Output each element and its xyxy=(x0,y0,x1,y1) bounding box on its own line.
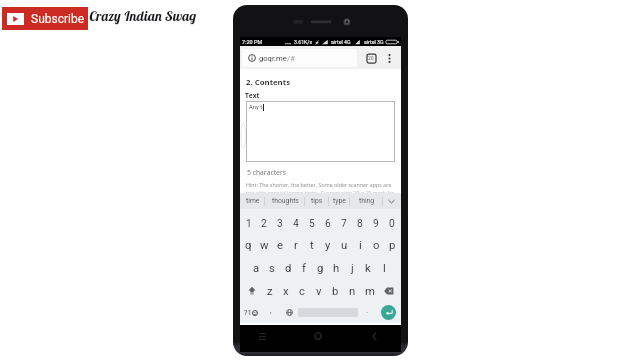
button[interactable]: i xyxy=(352,233,368,256)
button[interactable]: 7 xyxy=(336,209,352,233)
button[interactable]: h xyxy=(328,256,344,279)
staticText: ?1 xyxy=(244,308,252,317)
button[interactable]: c xyxy=(294,279,310,302)
staticText: thoughts xyxy=(272,197,299,205)
button[interactable]: Home xyxy=(309,327,327,345)
staticText: s xyxy=(269,262,275,275)
staticText: , xyxy=(270,306,272,315)
staticText: Crazy Indian Swag xyxy=(89,6,197,24)
button[interactable]: k xyxy=(360,256,376,279)
staticText: b xyxy=(332,285,339,298)
button[interactable]: 3 xyxy=(272,209,288,233)
button[interactable]: Change language xyxy=(280,302,298,323)
button[interactable]: t xyxy=(304,233,320,256)
button[interactable]: 2 xyxy=(256,209,272,233)
button[interactable]: m xyxy=(361,279,378,302)
button[interactable]: 6 xyxy=(320,209,336,233)
button[interactable]: b xyxy=(327,279,344,302)
button[interactable]: thoughts xyxy=(265,193,305,209)
staticText: m xyxy=(365,285,375,298)
staticText: 7:20 PM xyxy=(242,39,263,45)
staticText: airtel 3G xyxy=(364,39,384,45)
staticText: 2 xyxy=(261,218,267,230)
button[interactable]: 8 xyxy=(352,209,368,233)
staticText: not able to read longer texts. Current s… xyxy=(246,189,395,196)
button[interactable]: Enter xyxy=(381,305,396,320)
button[interactable]: Backspace xyxy=(378,279,400,302)
button[interactable]: n xyxy=(344,279,361,302)
staticText: type xyxy=(333,197,346,205)
button[interactable]: type xyxy=(329,193,350,209)
button[interactable]: Tabs xyxy=(364,51,378,65)
staticText: 4 xyxy=(293,218,299,230)
staticText: v xyxy=(316,285,322,298)
button[interactable]: Any t xyxy=(246,101,395,162)
button[interactable]: e xyxy=(272,233,288,256)
button[interactable]: Subscribe xyxy=(2,7,88,30)
button[interactable]: Recents xyxy=(253,327,271,345)
staticText: 5 xyxy=(309,218,315,230)
staticText: airtel 4G xyxy=(331,39,351,45)
staticText: p xyxy=(389,239,396,252)
button[interactable]: 5 xyxy=(304,209,320,233)
button[interactable]: Back xyxy=(365,327,383,345)
staticText: 3.61K/s xyxy=(294,39,313,45)
button[interactable]: ?1 xyxy=(241,302,261,323)
button[interactable]: goqr.me xyxy=(242,49,357,67)
button[interactable]: tips xyxy=(305,193,329,209)
button[interactable]: thing xyxy=(350,193,383,209)
staticText: w xyxy=(260,239,269,252)
button[interactable]: z xyxy=(262,279,278,302)
staticText: d xyxy=(285,262,292,275)
staticText: z xyxy=(267,285,273,298)
staticText: Subscribe xyxy=(31,12,85,26)
button[interactable]: y xyxy=(320,233,336,256)
button[interactable]: v xyxy=(310,279,327,302)
button[interactable]: 4 xyxy=(288,209,304,233)
button[interactable]: p xyxy=(384,233,400,256)
staticText: 3 xyxy=(277,218,283,230)
button[interactable]: u xyxy=(336,233,352,256)
staticText: time xyxy=(246,197,260,205)
button[interactable]: r xyxy=(288,233,304,256)
staticText: n xyxy=(349,285,356,298)
button[interactable]: 9 xyxy=(368,209,384,233)
button[interactable]: 1 xyxy=(241,209,256,233)
button[interactable]: f xyxy=(296,256,312,279)
staticText: 0 xyxy=(389,218,395,230)
button[interactable]: time xyxy=(241,193,265,209)
button[interactable]: a xyxy=(248,256,264,279)
staticText: Crazy Indian Swag xyxy=(89,7,197,25)
staticText: o xyxy=(373,239,380,252)
staticText: 20 xyxy=(368,55,374,61)
button[interactable]: o xyxy=(368,233,384,256)
button[interactable]: s xyxy=(264,256,280,279)
staticText: . xyxy=(366,306,369,315)
button[interactable]: l xyxy=(376,256,392,279)
staticText: Any t xyxy=(249,104,263,111)
button[interactable]: Shift xyxy=(241,279,262,302)
button[interactable]: j xyxy=(344,256,360,279)
button[interactable]: Expand suggestions xyxy=(383,193,400,209)
button[interactable]: q xyxy=(241,233,256,256)
staticText: u xyxy=(341,239,348,252)
staticText: x xyxy=(283,285,289,298)
button[interactable]: w xyxy=(256,233,272,256)
staticText: Crazy Indian Swag xyxy=(88,7,196,25)
staticText: goqr.me xyxy=(259,54,287,63)
staticText: Crazy Indian Swag xyxy=(89,8,197,26)
button[interactable]: x xyxy=(278,279,294,302)
button[interactable]: d xyxy=(280,256,296,279)
button[interactable]: g xyxy=(312,256,328,279)
staticText: r xyxy=(294,239,298,252)
button[interactable]: More options xyxy=(382,51,396,65)
button[interactable]: 0 xyxy=(384,209,400,233)
staticText: l xyxy=(383,262,386,275)
staticText: 2. Contents xyxy=(246,77,291,88)
staticText: 8 xyxy=(357,218,363,230)
button[interactable]: , xyxy=(261,302,280,323)
staticText: a xyxy=(253,262,260,275)
staticText: g xyxy=(317,262,324,275)
